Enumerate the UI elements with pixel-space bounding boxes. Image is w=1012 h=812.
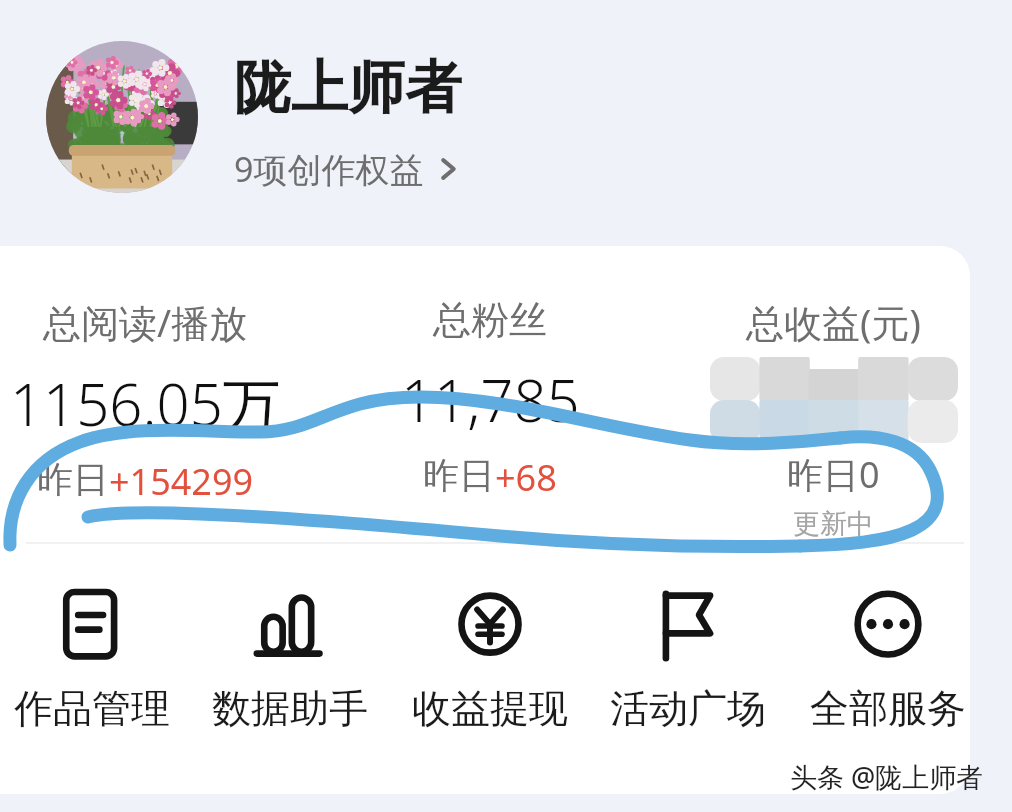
button[interactable]: 活动广场 [593,580,783,733]
staticText: +154299 [109,457,254,506]
staticText: +68 [495,453,557,502]
button[interactable]: 总收益(元) [673,296,993,541]
button[interactable]: 总阅读/播放 [0,296,290,506]
staticText: 全部服务 [810,684,966,733]
staticText: 头条 @陇上师者 [790,758,984,795]
button[interactable]: 收益提现 [395,580,585,733]
button[interactable]: 数据助手 [195,580,385,733]
staticText: 总收益(元) [746,296,921,348]
staticText: 总阅读/播放 [43,296,248,348]
button[interactable]: 全部服务 [793,580,983,733]
button[interactable]: 作品管理 [0,580,187,733]
staticText: 活动广场 [610,684,766,733]
staticText: 数据助手 [212,684,368,733]
staticText: 1156.05万 [10,364,281,443]
staticText: 9项创作权益 [234,146,424,192]
staticText: 总粉丝 [433,296,547,344]
button[interactable]: Profile avatar [46,41,198,193]
staticText: 昨日 [423,453,495,498]
button[interactable]: 总粉丝 [330,296,650,502]
staticText: 更新中 [793,507,874,541]
staticText: 收益提现 [412,684,568,733]
staticText: 作品管理 [14,684,170,733]
staticText: 11,785 [401,360,580,439]
button[interactable]: 陇上师者 [234,52,462,124]
staticText: 昨日 [37,457,109,502]
staticText: 昨日0 [787,450,880,499]
button[interactable]: 9项创作权益 [234,146,460,192]
